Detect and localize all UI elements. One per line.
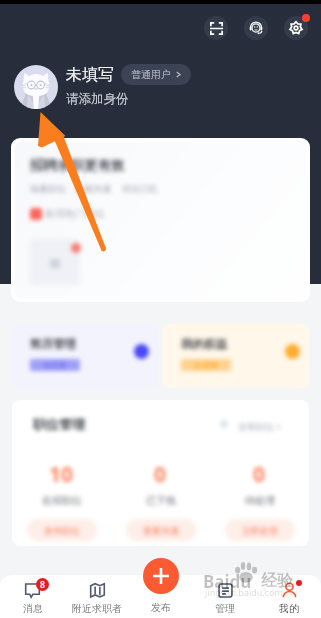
staticText: 精准匹配 (122, 183, 158, 194)
button[interactable]: 附近求职者 (65, 575, 129, 618)
staticText: 招聘求职更有效 (30, 157, 125, 174)
button[interactable]: Settings (284, 16, 308, 40)
staticText: 管理 (215, 602, 235, 615)
staticText: 已下线 (146, 494, 176, 507)
staticText: 附近求职者 (72, 602, 122, 615)
button[interactable]: 0 (111, 460, 210, 541)
staticText: 待处理 (245, 494, 275, 507)
staticText: 发布职位 (44, 525, 80, 536)
staticText: 请添加身份 (66, 91, 129, 107)
button[interactable]: 10 (12, 460, 111, 541)
staticText: 高效沟通 (75, 183, 111, 194)
staticText: jingyan.baidu.com (205, 586, 283, 598)
staticText: 0 (253, 460, 266, 489)
staticText: 0 (154, 460, 167, 489)
staticText: 发布 (151, 601, 171, 614)
button[interactable]: 发布 (129, 575, 193, 618)
button[interactable]: 8 (0, 575, 65, 618)
button[interactable]: Customer service (244, 16, 268, 40)
button[interactable]: 招聘求职更有效 (11, 138, 310, 302)
staticText: 去查看 (194, 360, 218, 370)
staticText: 10 (49, 460, 74, 489)
button[interactable]: 0 (210, 460, 309, 541)
staticText: 全部职位 > (238, 420, 282, 432)
staticText: 消息 (23, 602, 43, 615)
staticText: 海量职位 (30, 183, 66, 194)
button[interactable]: 我的权益 (163, 324, 309, 388)
staticText: 未填写 (66, 65, 114, 85)
staticText: 简历管理 (30, 337, 76, 351)
button[interactable]: 简历管理 (12, 324, 158, 388)
staticText: 立即处理 (242, 525, 278, 536)
button[interactable]: Publish (143, 558, 179, 594)
staticText: Baidu (203, 570, 252, 593)
staticText: 职位管理 (33, 416, 85, 432)
staticText: 我的权益 (181, 337, 227, 351)
staticText: 8 (40, 579, 45, 591)
staticText: 在招职位 (42, 494, 82, 507)
staticText: 急招热门岗位 (45, 207, 105, 220)
button[interactable]: 我的 (257, 575, 321, 618)
staticText: 经验 (261, 571, 293, 591)
button[interactable]: Avatar (14, 65, 58, 109)
staticText: 普通用户 (131, 68, 171, 81)
staticText: 查看沟通 (143, 525, 179, 536)
staticText: 去完善 (43, 360, 67, 370)
button[interactable]: Scan (204, 16, 228, 40)
button[interactable]: 管理 (193, 575, 257, 618)
button[interactable]: 普通用户 (121, 64, 191, 85)
staticText: 我的 (279, 602, 299, 615)
